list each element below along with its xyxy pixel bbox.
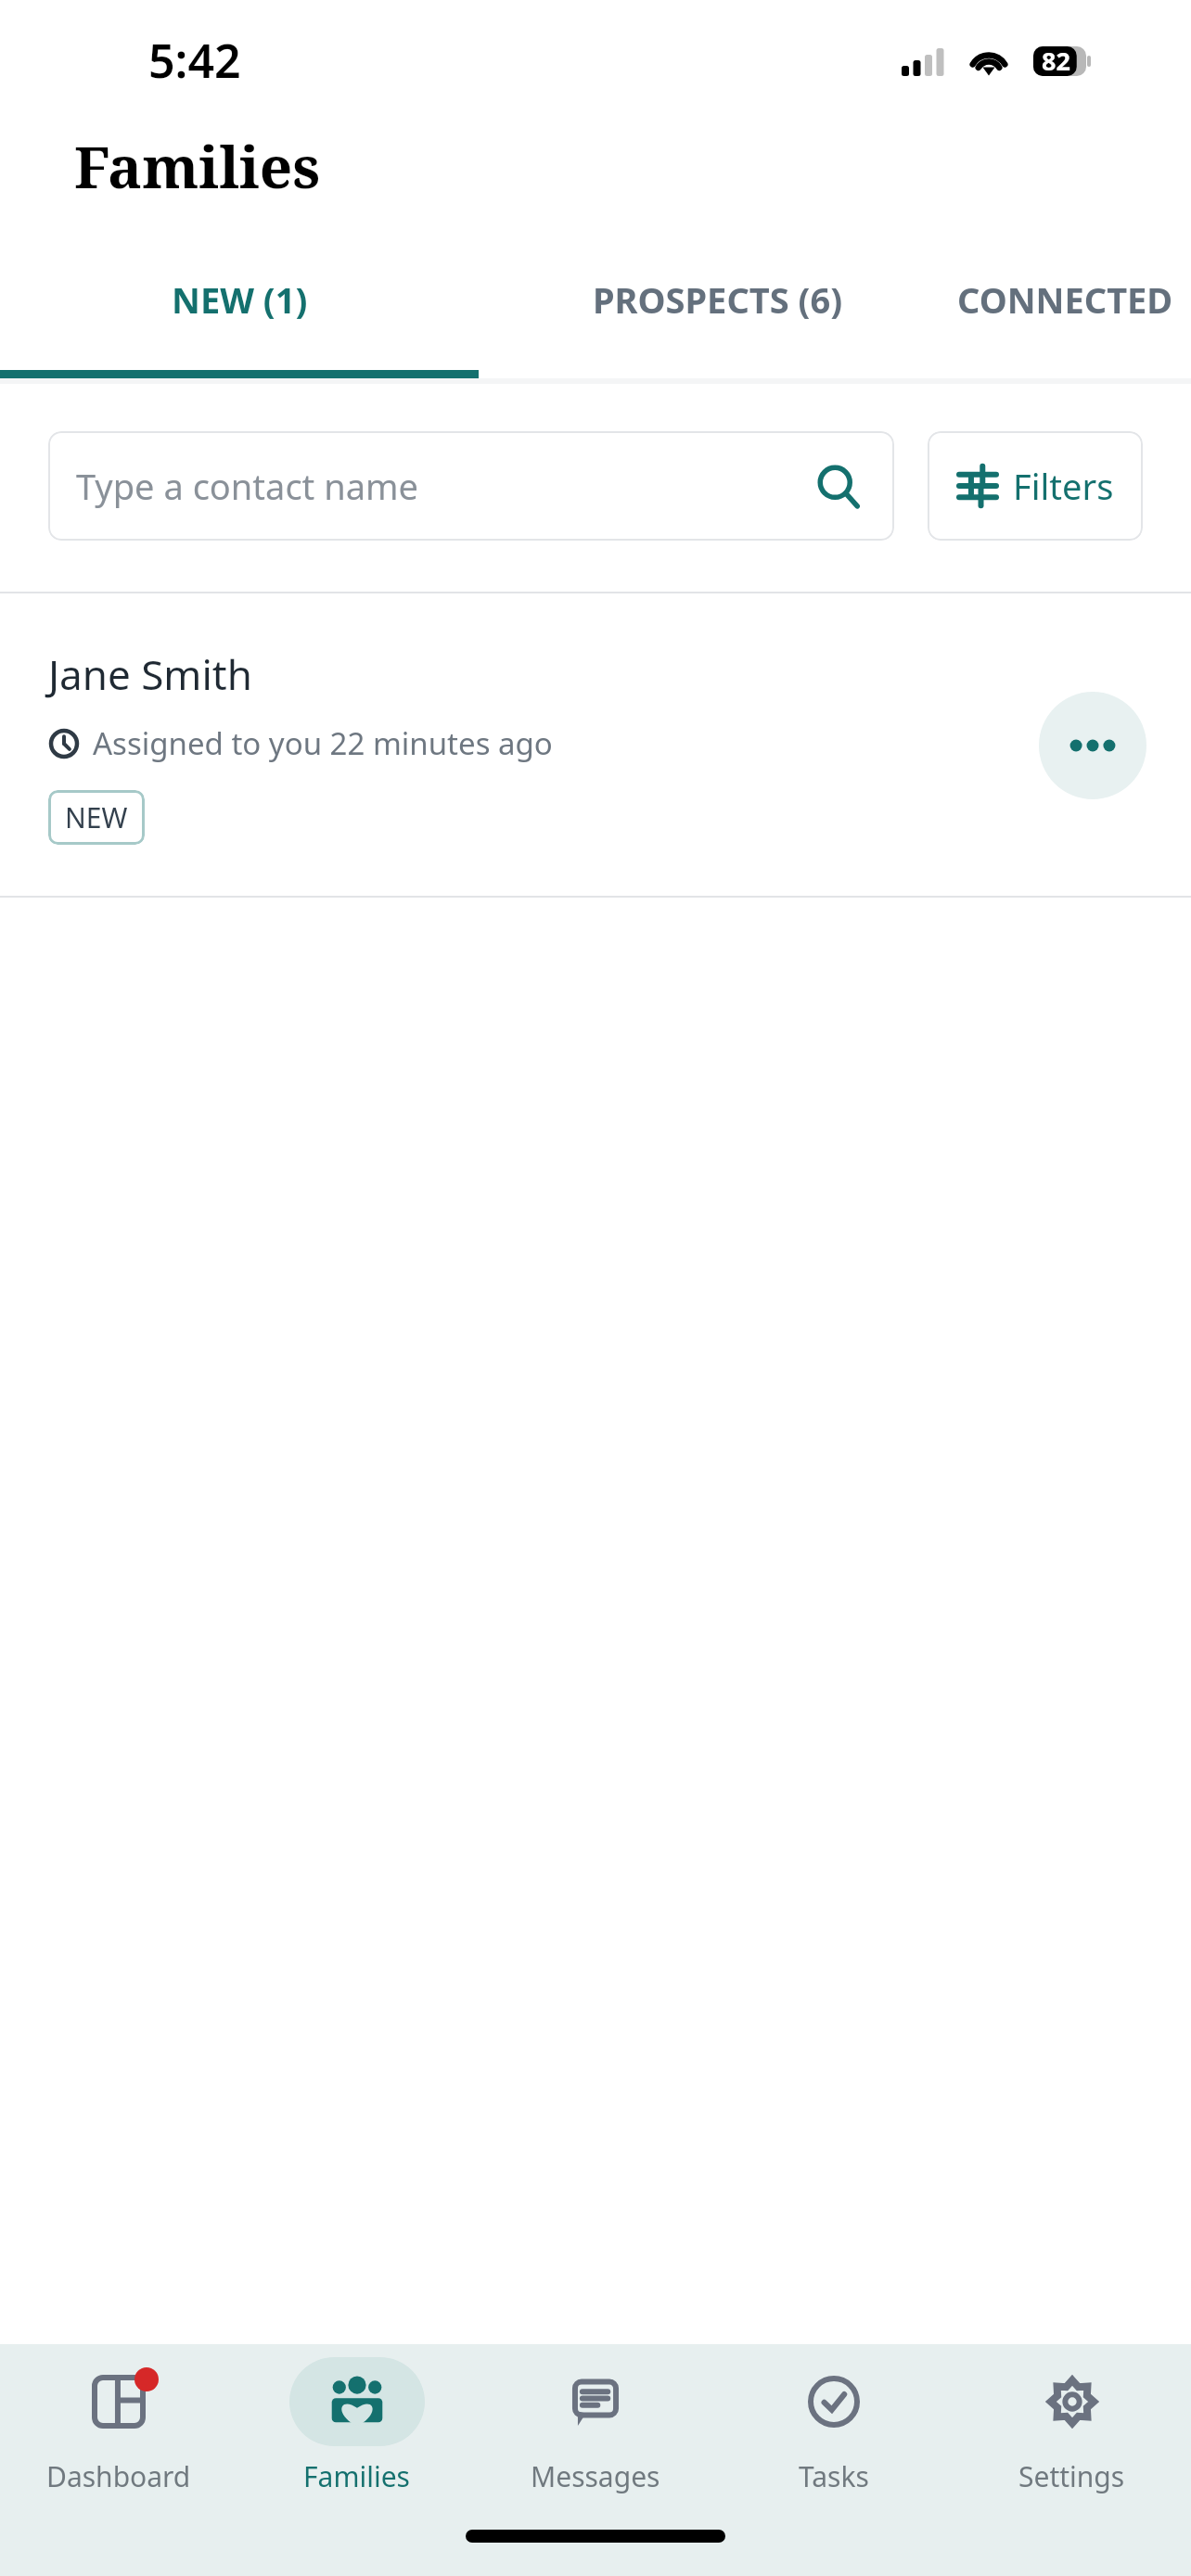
button[interactable]: More options: [1039, 692, 1146, 799]
staticText: Type a contact name: [76, 462, 418, 510]
button[interactable]: Settings: [953, 2344, 1191, 2520]
staticText: Messages: [531, 2457, 660, 2495]
staticText: 5:42: [148, 29, 241, 92]
staticText: Jane Smith: [48, 646, 252, 702]
staticText: Settings: [1018, 2457, 1125, 2495]
staticText: NEW: [65, 798, 128, 836]
staticText: CONNECTED (3): [957, 275, 1191, 324]
staticText: Families: [74, 127, 321, 205]
staticText: Families: [303, 2457, 410, 2495]
button[interactable]: PROSPECTS (6): [479, 221, 957, 378]
button[interactable]: NEW (1): [0, 221, 479, 378]
button[interactable]: Dashboard: [0, 2344, 237, 2520]
staticText: PROSPECTS (6): [593, 275, 843, 324]
staticText: Assigned to you 22 minutes ago: [93, 722, 553, 764]
staticText: NEW (1): [172, 275, 308, 324]
button[interactable]: Type a contact name: [48, 431, 894, 541]
button[interactable]: CONNECTED (3): [957, 221, 1191, 378]
staticText: 82: [1042, 44, 1070, 78]
button[interactable]: NEW: [65, 798, 128, 836]
button[interactable]: Messages: [476, 2344, 714, 2520]
button[interactable]: Tasks: [714, 2344, 953, 2520]
staticText: Tasks: [799, 2457, 869, 2495]
button[interactable]: Families: [237, 2344, 476, 2520]
staticText: Filters: [1013, 462, 1114, 510]
staticText: Dashboard: [46, 2457, 191, 2495]
button[interactable]: Filters: [928, 431, 1143, 541]
button[interactable]: Jane Smith: [0, 593, 1191, 898]
